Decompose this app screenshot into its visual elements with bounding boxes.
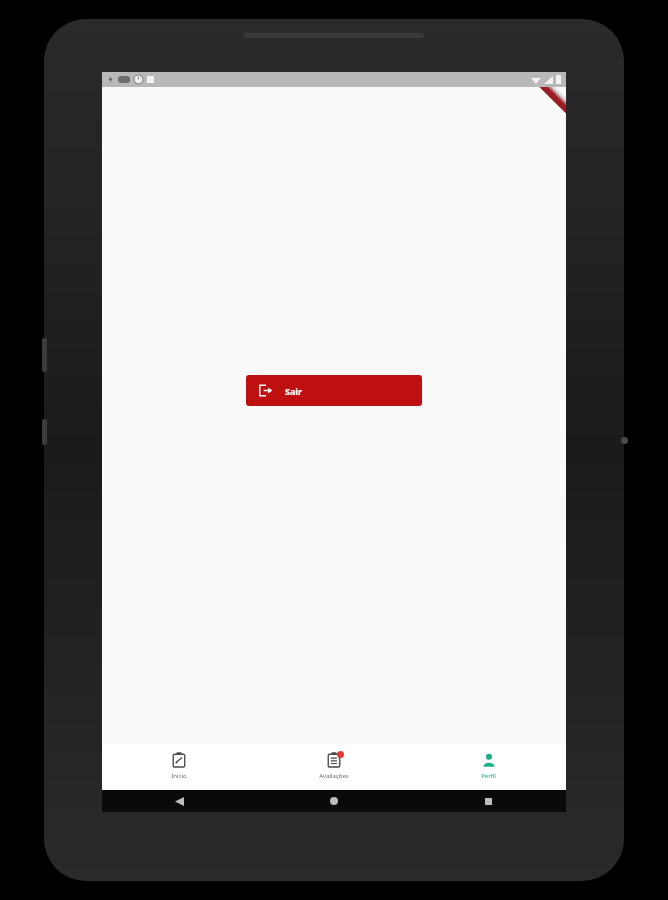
button[interactable]: Back	[102, 790, 256, 812]
staticText: Início	[171, 772, 187, 780]
button[interactable]: Início	[102, 744, 256, 790]
button[interactable]: Home	[256, 790, 411, 812]
staticText: Avaliações	[319, 772, 349, 780]
button[interactable]: Perfil	[411, 744, 566, 790]
staticText: Perfil	[481, 772, 496, 780]
button[interactable]: Recent apps	[411, 790, 566, 812]
button[interactable]: Avaliações	[256, 744, 411, 790]
button[interactable]: Sair	[246, 375, 422, 406]
staticText: Sair	[285, 385, 303, 397]
